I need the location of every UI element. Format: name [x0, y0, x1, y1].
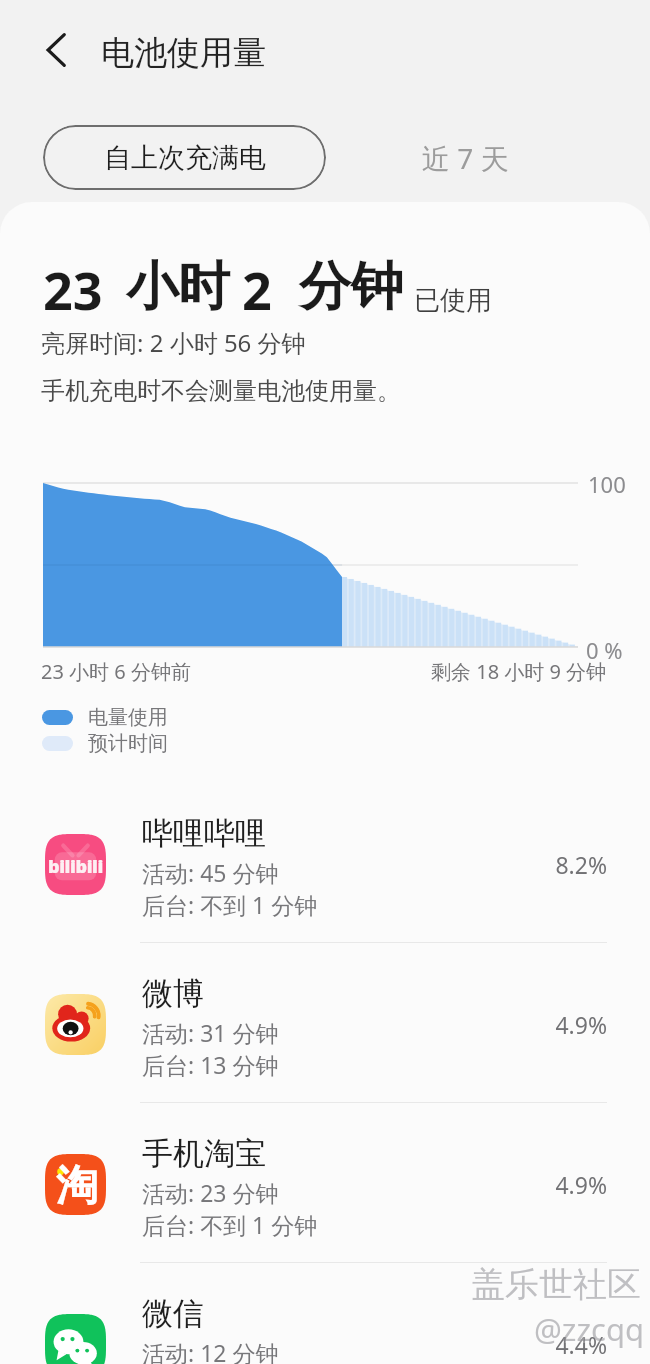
staticText: 0 %: [586, 635, 623, 665]
staticText: 8.2%: [555, 849, 607, 880]
staticText: 手机充电时不会测量电池使用量。: [41, 376, 401, 406]
staticText: 淘: [56, 1160, 98, 1213]
staticText: 预计时间: [88, 731, 168, 756]
button[interactable]: 淘: [0, 1103, 650, 1263]
staticText: @zzcqq: [536, 1310, 647, 1352]
staticText: bilibili: [48, 854, 103, 879]
staticText: 活动: 45 分钟: [142, 857, 279, 888]
button[interactable]: 自上次充满电: [43, 125, 326, 190]
staticText: 亮屏时间: 2 小时 56 分钟: [41, 326, 306, 359]
staticText: 电池使用量: [101, 32, 266, 74]
staticText: 活动: 23 分钟: [142, 1177, 279, 1208]
staticText: 小时: [126, 254, 230, 320]
staticText: 微博: [142, 974, 204, 1013]
button[interactable]: Back: [30, 24, 82, 76]
staticText: 后台: 不到 1 分钟: [142, 889, 318, 920]
button[interactable]: 微信: [0, 1263, 650, 1364]
staticText: 电量使用: [88, 705, 168, 730]
button[interactable]: 微博: [0, 943, 650, 1103]
staticText: 盖乐世社区: [473, 1265, 643, 1308]
staticText: 微信: [142, 1294, 204, 1333]
staticText: 4.9%: [555, 1009, 607, 1040]
staticText: 后台: 不到 1 分钟: [142, 1209, 318, 1240]
staticText: 活动: 12 分钟: [142, 1337, 279, 1364]
staticText: 近 7 天: [422, 139, 509, 177]
staticText: 23 小时 6 分钟前: [41, 658, 191, 685]
staticText: 哔哩哔哩: [142, 814, 266, 853]
staticText: 4.9%: [555, 1169, 607, 1200]
staticText: 自上次充满电: [104, 141, 266, 175]
staticText: 2: [242, 254, 272, 325]
staticText: 100: [588, 469, 626, 499]
staticText: 剩余 18 小时 9 分钟: [431, 658, 607, 685]
staticText: @zzcqq: [534, 1308, 645, 1350]
staticText: 23: [43, 254, 103, 325]
staticText: 手机淘宝: [142, 1134, 266, 1173]
staticText: 4.4%: [555, 1329, 607, 1360]
staticText: 分钟: [299, 254, 403, 320]
button[interactable]: bilibili: [0, 783, 650, 943]
staticText: 盖乐世社区: [471, 1263, 641, 1306]
staticText: 后台: 13 分钟: [142, 1049, 279, 1080]
button[interactable]: 近 7 天: [400, 125, 530, 190]
staticText: 活动: 31 分钟: [142, 1017, 279, 1048]
staticText: 已使用: [414, 284, 492, 317]
